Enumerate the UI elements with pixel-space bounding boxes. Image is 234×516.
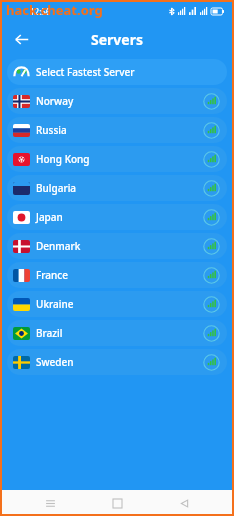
button[interactable]: France: [7, 262, 227, 288]
button[interactable]: Brazil: [7, 320, 227, 346]
staticText: Russia: [36, 123, 67, 137]
button[interactable]: Russia: [7, 117, 227, 143]
staticText: hack.cheat.org: [6, 1, 103, 19]
staticText: Norway: [36, 94, 74, 108]
button[interactable]: Back: [167, 490, 201, 516]
staticText: 12:56: [30, 6, 51, 17]
button[interactable]: Home: [100, 490, 134, 516]
staticText: Sweden: [36, 355, 74, 369]
staticText: Bulgaria: [36, 181, 77, 195]
button[interactable]: Recent apps: [33, 490, 67, 516]
staticText: France: [36, 268, 68, 282]
button[interactable]: Bulgaria: [7, 175, 227, 201]
button[interactable]: Ukraine: [7, 291, 227, 317]
button[interactable]: Japan: [7, 204, 227, 230]
staticText: Select Fastest Server: [36, 65, 135, 79]
button[interactable]: Select Fastest Server: [7, 59, 227, 85]
button[interactable]: Hong Kong: [7, 146, 227, 172]
staticText: Brazil: [36, 326, 63, 340]
button[interactable]: Norway: [7, 88, 227, 114]
staticText: Japan: [36, 210, 63, 224]
button[interactable]: Back: [8, 26, 34, 52]
staticText: Ukraine: [36, 297, 74, 311]
button[interactable]: Denmark: [7, 233, 227, 259]
button[interactable]: Sweden: [7, 349, 227, 375]
staticText: Servers: [91, 30, 143, 49]
staticText: Hong Kong: [36, 152, 90, 166]
staticText: Denmark: [36, 239, 81, 253]
